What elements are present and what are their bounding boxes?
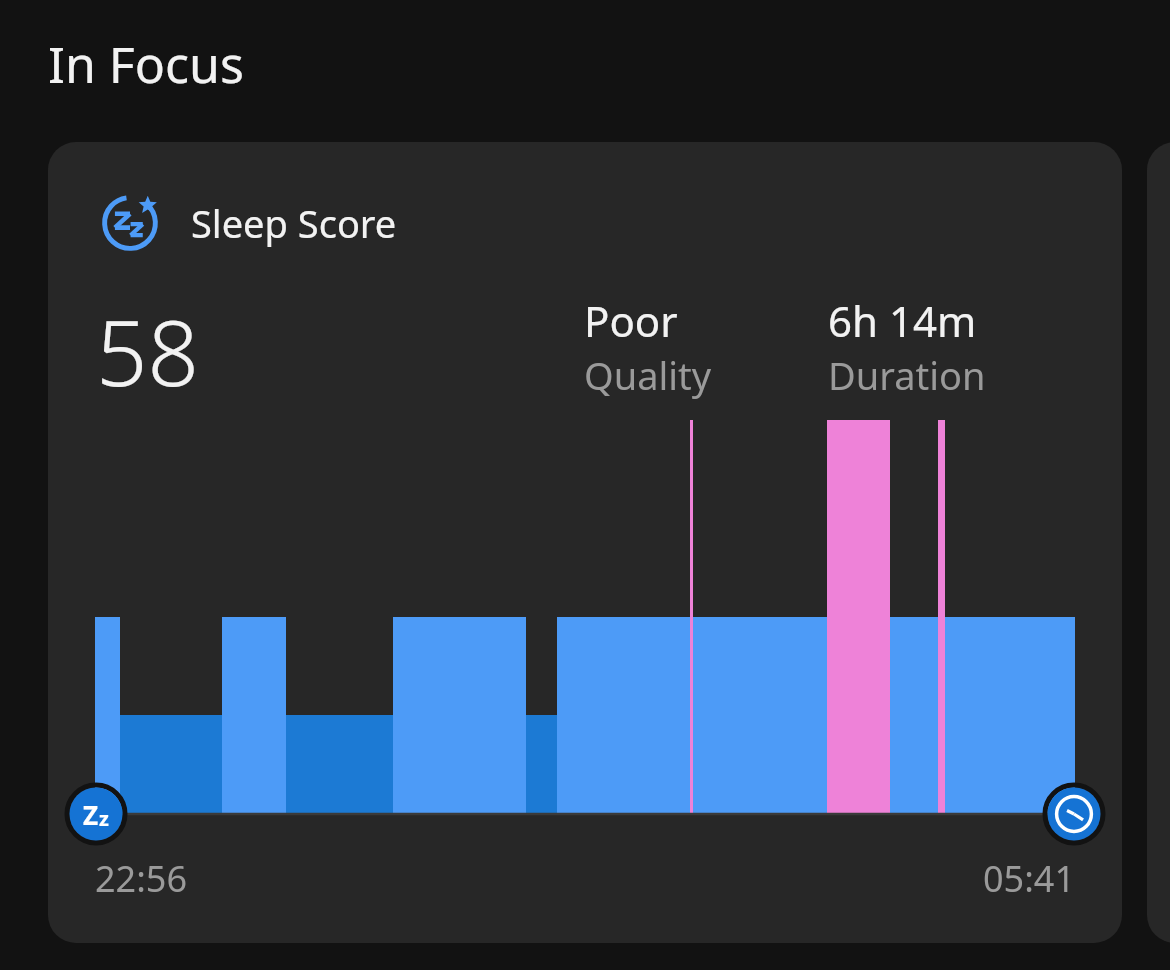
staticText: In Focus: [48, 30, 244, 98]
button[interactable]: Poor: [584, 292, 712, 401]
staticText: 05:41: [875, 854, 1075, 903]
staticText: Z: [83, 797, 99, 832]
staticText: Sleep Score: [191, 197, 397, 249]
staticText: Duration: [828, 349, 986, 401]
staticText: 6h 14m: [828, 292, 977, 349]
button[interactable]: Sleep Score: [48, 142, 1122, 943]
staticText: Poor: [584, 292, 678, 349]
button[interactable]: [95, 412, 1075, 822]
staticText: 22:56: [95, 854, 188, 903]
staticText: 58: [96, 290, 199, 413]
button[interactable]: 6h 14m: [828, 292, 986, 401]
staticText: Quality: [584, 349, 712, 401]
button[interactable]: Sleep start: [67, 785, 125, 843]
staticText: z: [99, 805, 109, 832]
button[interactable]: Wake time: [1045, 785, 1103, 843]
